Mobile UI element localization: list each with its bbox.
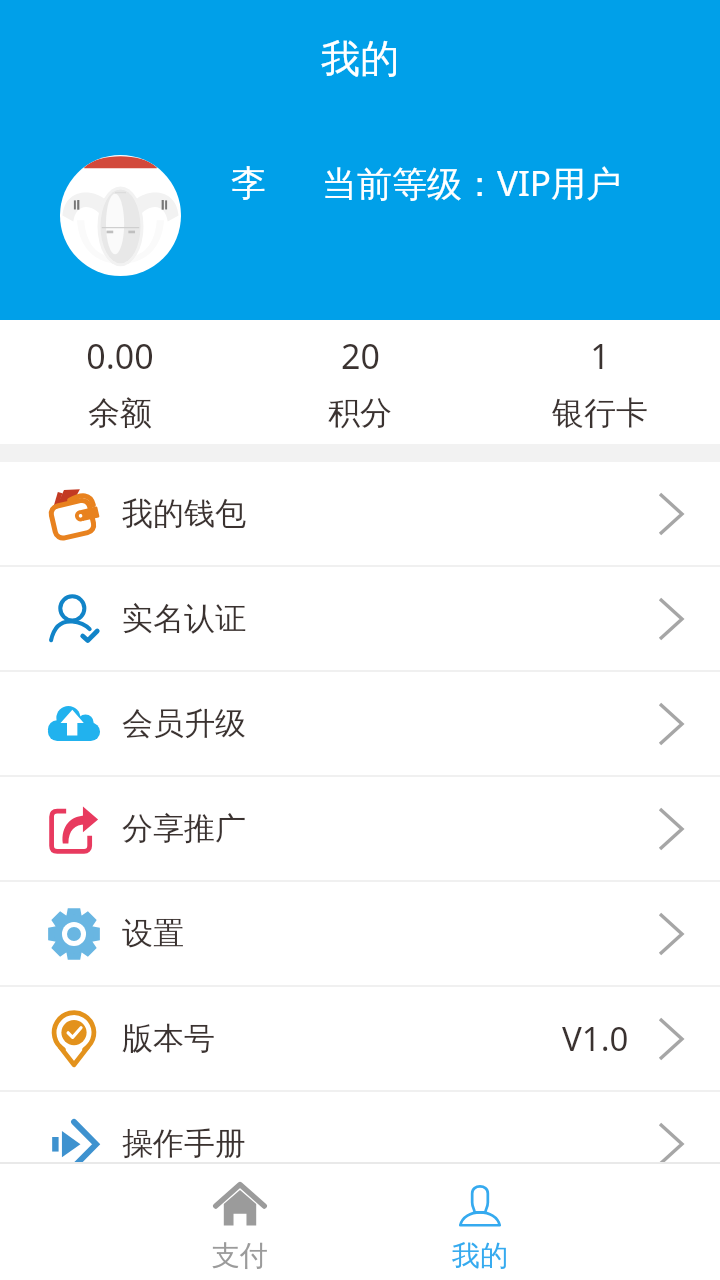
button[interactable]: 分享推广	[0, 777, 720, 880]
staticText: 操作手册	[122, 1124, 246, 1163]
staticText: 设置	[122, 914, 184, 953]
button[interactable]: 版本号	[0, 987, 720, 1090]
staticText: 银行卡	[552, 393, 648, 433]
staticText: 我的钱包	[122, 494, 246, 533]
button[interactable]: 实名认证	[0, 567, 720, 670]
button[interactable]: 20	[240, 320, 480, 433]
staticText: V1.0	[562, 1016, 629, 1061]
staticText: 分享推广	[122, 809, 246, 848]
staticText: 会员升级	[122, 704, 246, 743]
staticText: 积分	[328, 393, 392, 433]
staticText: 支付	[212, 1238, 268, 1273]
button[interactable]: 支付	[120, 1164, 360, 1273]
staticText: 实名认证	[122, 599, 246, 638]
button[interactable]: 我的钱包	[0, 462, 720, 565]
button[interactable]: 0.00	[0, 320, 240, 433]
staticText: 1	[590, 333, 610, 379]
button[interactable]: 操作手册	[0, 1092, 720, 1195]
staticText: 20	[341, 333, 380, 379]
staticText: 当前等级：VIP用户	[322, 159, 622, 207]
button[interactable]: Profile photo	[60, 155, 181, 276]
button[interactable]: 设置	[0, 882, 720, 985]
staticText: 余额	[88, 393, 152, 433]
staticText: 我的	[452, 1238, 508, 1273]
button[interactable]: 我的	[360, 1164, 600, 1273]
button[interactable]: 会员升级	[0, 672, 720, 775]
staticText: 我的	[321, 34, 399, 83]
staticText: 李	[231, 161, 266, 205]
button[interactable]: 1	[480, 320, 720, 433]
staticText: 0.00	[86, 333, 154, 379]
staticText: 版本号	[122, 1019, 215, 1058]
